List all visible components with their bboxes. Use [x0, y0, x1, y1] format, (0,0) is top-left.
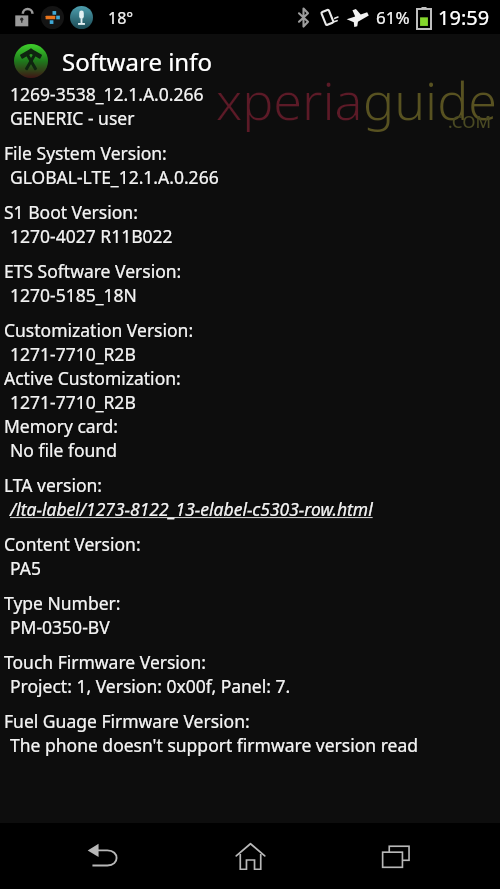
- button[interactable]: 1269-3538_12.1.A.0.266: [10, 82, 494, 106]
- button[interactable]: Touch Firmware Version:: [4, 650, 494, 674]
- button[interactable]: Type Number:: [4, 591, 494, 615]
- button[interactable]: 1271-7710_R2B: [10, 342, 494, 366]
- staticText: 19:59: [438, 4, 490, 31]
- staticText: 61%: [376, 6, 410, 29]
- button[interactable]: S1 Boot Version:: [4, 200, 494, 224]
- button[interactable]: Content Version:: [4, 532, 494, 556]
- staticText: guide: [363, 64, 498, 135]
- button[interactable]: LTA version:: [4, 473, 494, 497]
- button[interactable]: The phone doesn't support firmware versi…: [10, 733, 494, 757]
- button[interactable]: 1271-7710_R2B: [10, 390, 494, 414]
- staticText: .COM: [448, 110, 492, 133]
- button[interactable]: Recent apps: [354, 823, 438, 889]
- button[interactable]: Customization Version:: [4, 318, 494, 342]
- button[interactable]: 1270-5185_18N: [10, 283, 494, 307]
- button[interactable]: PM-0350-BV: [10, 615, 494, 639]
- button[interactable]: Back: [62, 823, 146, 889]
- button[interactable]: GLOBAL-LTE_12.1.A.0.266: [10, 165, 494, 189]
- button[interactable]: ETS Software Version:: [4, 259, 494, 283]
- button[interactable]: Fuel Guage Firmware Version:: [4, 709, 494, 733]
- button[interactable]: No file found: [10, 438, 494, 462]
- button[interactable]: /lta-label/1273-8122_13-elabel-c5303-row…: [10, 497, 494, 521]
- button[interactable]: Memory card:: [4, 414, 494, 438]
- button[interactable]: Software info: [14, 44, 500, 78]
- button[interactable]: GENERIC - user: [10, 106, 494, 130]
- button[interactable]: File System Version:: [4, 141, 494, 165]
- button[interactable]: Project: 1, Version: 0x00f, Panel: 7.: [10, 674, 494, 698]
- button[interactable]: 1270-4027 R11B022: [10, 224, 494, 248]
- button[interactable]: Home: [208, 823, 292, 889]
- button[interactable]: PA5: [10, 556, 494, 580]
- staticText: Software info: [62, 45, 212, 78]
- staticText: xperia: [216, 64, 363, 135]
- button[interactable]: Active Customization:: [4, 366, 494, 390]
- staticText: 18°: [108, 7, 134, 29]
